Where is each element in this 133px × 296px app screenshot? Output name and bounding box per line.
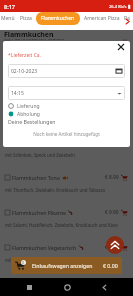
button[interactable]: Recents [20, 278, 38, 296]
staticText: € 8.90 [105, 174, 119, 181]
button[interactable]: Scroll to top [106, 236, 124, 254]
staticText: ▮ [128, 3, 131, 9]
staticText: Pizza [20, 15, 32, 22]
staticText: Noch keine Artikel hinzugefügt [8, 131, 125, 137]
button[interactable]: Close [116, 42, 125, 51]
staticText: € 9.90 [105, 244, 119, 251]
staticText: € 9.90 [105, 209, 119, 216]
staticText: Flammkuchen [4, 30, 54, 39]
button[interactable]: Flammkuchen Hawaii [0, 104, 133, 139]
staticText: Flammkuchen Tono [12, 174, 60, 181]
button[interactable]: 14:15 [8, 86, 125, 100]
staticText: Flammkuchen Hawaii [12, 104, 65, 111]
staticText: mit Paprika, Zwiebeln, Mais und Champign… [5, 257, 101, 263]
staticText: Flammkuchen Classic [12, 34, 65, 41]
button[interactable]: Abholung [8, 110, 125, 118]
staticText: € 0.00 [103, 262, 118, 269]
button[interactable]: Flammkuchen Elsässer [0, 139, 133, 174]
staticText: Menü [1, 15, 15, 22]
staticText: mit Schinken, Speck und Zwiebeln [5, 152, 75, 158]
staticText: Flammkuchen Pikante [12, 209, 66, 216]
staticText: 0 [22, 260, 25, 265]
staticText: Flammkuchen [41, 15, 75, 22]
staticText: 14:15 [11, 90, 24, 97]
staticText: mit Schinken, Ananas und Zwiebeln [5, 117, 79, 123]
button[interactable]: 02-10-2023 [8, 64, 125, 78]
staticText: Lieferung [17, 103, 40, 110]
staticText: mit Thunfisch, Zwiebeln, Knoblauch und T… [5, 187, 106, 193]
button[interactable]: Back [95, 278, 113, 296]
staticText: 02-10-2023 [11, 68, 38, 75]
button[interactable]: Home [58, 278, 76, 296]
staticText: mit Salami, Hackfleisch, Zwiebeln, Knobl… [5, 222, 118, 228]
button[interactable]: Flammkuchen Vegetarisch [0, 244, 133, 279]
staticText: mit Paprika, Zwiebeln und Mais [5, 82, 70, 88]
button[interactable]: Flammkuchen Spezial [0, 69, 133, 104]
staticText: Abholung [17, 111, 40, 118]
staticText: Flammkuchen Vegetarisch [12, 244, 77, 251]
staticText: Pa [124, 15, 130, 22]
staticText: € 7.90 [105, 69, 119, 76]
staticText: 8:17 [4, 3, 15, 10]
button[interactable]: Flammkuchen Classic [0, 34, 133, 69]
button[interactable]: 0 [11, 257, 122, 274]
button[interactable]: Flammkuchen Pikante [0, 209, 133, 244]
staticText: American Pizza [84, 15, 120, 22]
button[interactable]: Flammkuchen Tono [0, 174, 133, 209]
button[interactable]: Flammkuchen [41, 15, 75, 22]
staticText: Flammkuchen Spezial [12, 69, 65, 76]
staticText: *Lieferzeit Ca. [8, 52, 41, 59]
staticText: Einkaufswagen anzeigen [32, 262, 93, 269]
button[interactable]: Lieferung [8, 102, 125, 110]
staticText: 26.4 Kb/s [109, 4, 127, 9]
staticText: Deine Bestellungen [8, 118, 56, 125]
